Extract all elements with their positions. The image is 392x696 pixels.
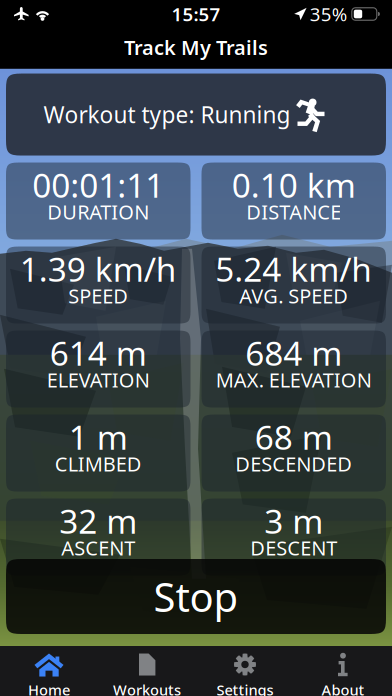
button[interactable]: 32 m <box>6 499 190 576</box>
staticText: About <box>321 680 364 696</box>
staticText: Track My Trails <box>124 34 268 61</box>
button[interactable]: About <box>294 646 392 696</box>
button[interactable]: 1.39 km/h <box>6 247 190 324</box>
staticText: 1 m <box>69 415 128 451</box>
staticText: 0.10 km <box>232 163 356 199</box>
staticText: ELEVATION <box>47 367 150 393</box>
staticText: 5.24 km/h <box>215 247 372 283</box>
staticText: 32 m <box>59 499 137 535</box>
button[interactable]: Workout type: Running <box>6 74 386 156</box>
staticText: DISTANCE <box>246 199 341 225</box>
button[interactable]: 00:01:11 <box>6 163 190 240</box>
staticText: 614 m <box>50 331 147 367</box>
staticText: MAX. ELEVATION <box>216 367 372 393</box>
staticText: 3 m <box>264 499 323 535</box>
button[interactable]: 684 m <box>201 331 386 408</box>
staticText: Settings <box>216 680 273 696</box>
staticText: 00:01:11 <box>32 163 164 199</box>
staticText: Workouts <box>113 680 181 696</box>
staticText: DURATION <box>47 199 149 225</box>
button[interactable]: 0.10 km <box>201 163 386 240</box>
staticText: DESCENDED <box>235 451 352 477</box>
staticText: 68 m <box>255 415 333 451</box>
staticText: 1.39 km/h <box>20 247 177 283</box>
staticText: CLIMBED <box>55 451 142 477</box>
button[interactable]: 3 m <box>201 499 386 576</box>
staticText: DESCENT <box>250 535 337 561</box>
staticText: SPEED <box>68 283 128 309</box>
staticText: AVG. SPEED <box>239 283 348 309</box>
button[interactable]: 1 m <box>6 415 190 492</box>
staticText: Stop <box>153 570 238 623</box>
button[interactable]: Workouts <box>98 646 196 696</box>
staticText: 35% <box>310 2 348 26</box>
button[interactable]: 68 m <box>201 415 386 492</box>
button[interactable]: 5.24 km/h <box>201 247 386 324</box>
staticText: Home <box>28 680 70 696</box>
staticText: 684 m <box>245 331 342 367</box>
button[interactable]: Home <box>0 646 98 696</box>
button[interactable]: Stop <box>6 559 386 634</box>
button[interactable]: Settings <box>196 646 294 696</box>
staticText: 15:57 <box>171 2 220 26</box>
button[interactable]: 614 m <box>6 331 190 408</box>
staticText: ASCENT <box>61 535 135 561</box>
staticText: Workout type: Running <box>43 99 290 130</box>
